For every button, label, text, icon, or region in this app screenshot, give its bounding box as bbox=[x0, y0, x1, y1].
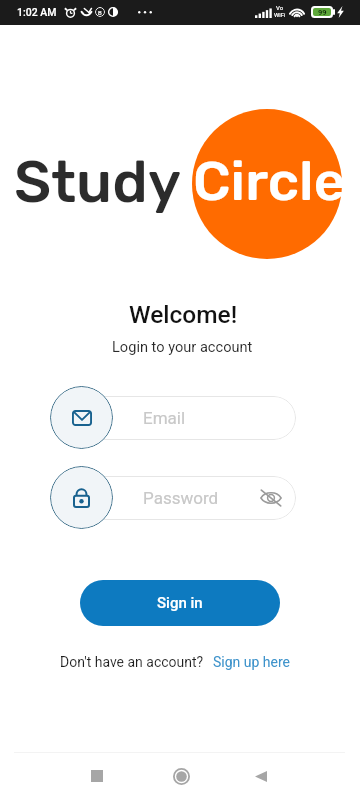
button[interactable]: Show password bbox=[258, 485, 284, 511]
staticText: B bbox=[98, 9, 102, 16]
button[interactable]: Email bbox=[50, 386, 113, 449]
staticText: Password bbox=[143, 488, 219, 508]
staticText: Login to your account bbox=[112, 338, 253, 355]
button[interactable]: Recents bbox=[75, 754, 119, 798]
staticText: Circle bbox=[193, 149, 346, 214]
button[interactable]: Password bbox=[70, 476, 296, 520]
staticText: Vo bbox=[276, 4, 284, 11]
staticText: Email bbox=[143, 408, 186, 428]
staticText: 1:02 AM bbox=[17, 6, 57, 18]
staticText: Welcome! bbox=[129, 300, 238, 329]
button[interactable]: Sign in bbox=[80, 580, 280, 626]
button[interactable]: Password bbox=[50, 466, 113, 529]
staticText: Study bbox=[14, 148, 181, 217]
staticText: 99 bbox=[318, 8, 327, 16]
staticText: Sign up here bbox=[213, 654, 291, 670]
button[interactable]: Home bbox=[159, 754, 203, 798]
staticText: WiFi bbox=[274, 11, 286, 18]
staticText: Sign in bbox=[157, 594, 203, 612]
button[interactable]: Sign up here bbox=[213, 654, 291, 670]
staticText: Don't have an account? bbox=[60, 654, 204, 670]
button[interactable]: Email bbox=[70, 396, 296, 440]
button[interactable]: Back bbox=[239, 754, 283, 798]
